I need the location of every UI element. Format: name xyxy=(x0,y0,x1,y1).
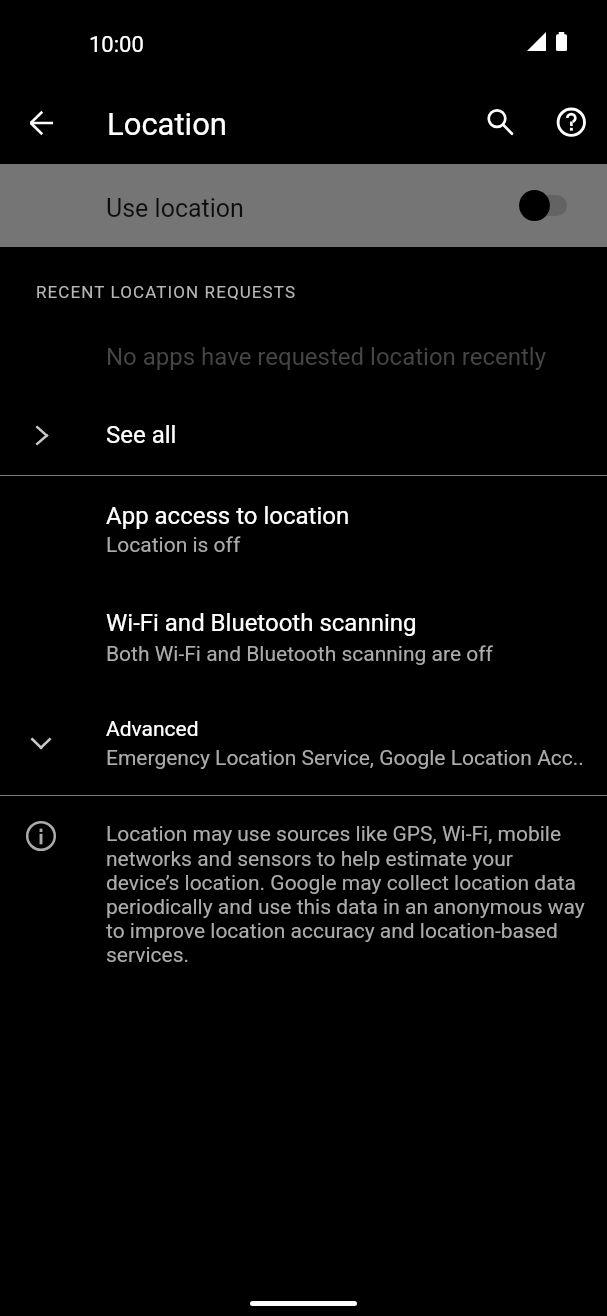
staticText: RECENT LOCATION REQUESTS xyxy=(36,282,297,302)
staticText: App access to location xyxy=(106,502,350,530)
button[interactable]: See all xyxy=(0,403,607,467)
staticText: No apps have requested location recently xyxy=(106,343,546,371)
button[interactable]: Use location xyxy=(0,164,607,247)
button[interactable]: Help xyxy=(547,98,595,146)
staticText: Location may use sources like GPS, Wi-Fi… xyxy=(106,822,588,967)
staticText: Advanced xyxy=(106,717,199,742)
button[interactable]: Wi-Fi and Bluetooth scanning xyxy=(0,597,607,673)
staticText: Wi-Fi and Bluetooth scanning xyxy=(106,609,417,637)
staticText: 10:00 xyxy=(89,32,144,58)
staticText: Location is off xyxy=(106,533,241,558)
button[interactable]: Search xyxy=(473,95,521,143)
staticText: Location xyxy=(107,106,227,142)
staticText: See all xyxy=(106,421,177,449)
button[interactable]: Back xyxy=(17,99,65,147)
staticText: Emergency Location Service, Google Locat… xyxy=(106,746,584,771)
button[interactable]: App access to location xyxy=(0,490,607,566)
button[interactable]: Advanced xyxy=(0,705,607,781)
staticText: Both Wi-Fi and Bluetooth scanning are of… xyxy=(106,642,493,667)
staticText: Use location xyxy=(106,194,244,223)
